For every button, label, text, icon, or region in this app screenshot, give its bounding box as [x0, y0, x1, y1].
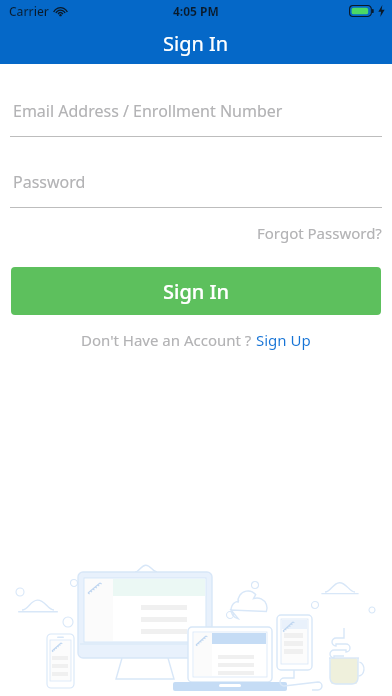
- staticText: Sign Up: [256, 330, 311, 350]
- staticText: Sign In: [163, 278, 230, 305]
- staticText: Carrier: [9, 3, 49, 19]
- staticText: 4:05 PM: [173, 3, 219, 19]
- other: Wi-Fi signal: [54, 6, 67, 16]
- button[interactable]: Sign In: [11, 267, 381, 315]
- other: Battery charging: [349, 5, 375, 17]
- button[interactable]: Password: [0, 171, 392, 208]
- button[interactable]: Email Address / Enrollment Number: [0, 100, 392, 137]
- staticText: Sign In: [163, 30, 229, 57]
- staticText: Password: [13, 171, 86, 193]
- button[interactable]: Forgot Password?: [255, 219, 384, 247]
- staticText: Email Address / Enrollment Number: [13, 100, 283, 122]
- button[interactable]: Sign Up: [256, 330, 311, 350]
- staticText: Don't Have an Account ?: [81, 330, 256, 350]
- staticText: Forgot Password?: [257, 223, 382, 243]
